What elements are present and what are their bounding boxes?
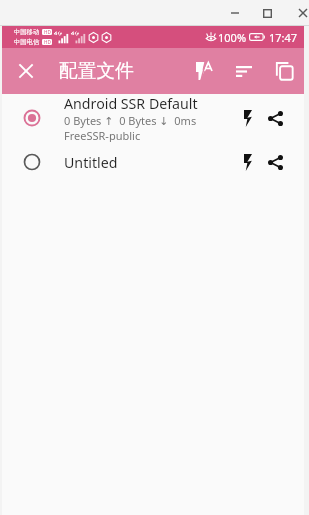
staticText: 0 Bytes ↑ 0 Bytes ↓ 0ms <box>64 113 197 128</box>
staticText: Android SSR Default <box>64 94 198 113</box>
staticText: HD <box>44 39 51 45</box>
staticText: FreeSSR-public <box>64 128 141 142</box>
staticText: HD <box>44 29 51 35</box>
button[interactable]: Share <box>261 142 289 182</box>
button[interactable]: Untitled <box>2 142 304 182</box>
button[interactable]: Maximize <box>251 1 284 25</box>
button[interactable]: Duplicate <box>264 48 304 94</box>
staticText: 17:47 <box>269 30 298 45</box>
staticText: 配置文件 <box>59 59 134 83</box>
button[interactable]: Android SSR Default <box>2 94 304 142</box>
button[interactable]: Close <box>2 48 49 94</box>
staticText: 中国移动 <box>14 28 40 36</box>
staticText: 100% <box>218 30 247 45</box>
button[interactable]: Test connection <box>235 98 261 138</box>
staticText: Untitled <box>64 153 118 172</box>
button[interactable]: Minimize <box>218 1 251 25</box>
button[interactable]: Sort <box>224 48 264 94</box>
staticText: 中国电信 <box>14 38 40 46</box>
button[interactable]: Test connection <box>235 142 261 182</box>
button[interactable]: Share <box>261 98 289 138</box>
button[interactable]: Close <box>286 1 309 25</box>
button[interactable]: Flash auto <box>184 48 224 94</box>
